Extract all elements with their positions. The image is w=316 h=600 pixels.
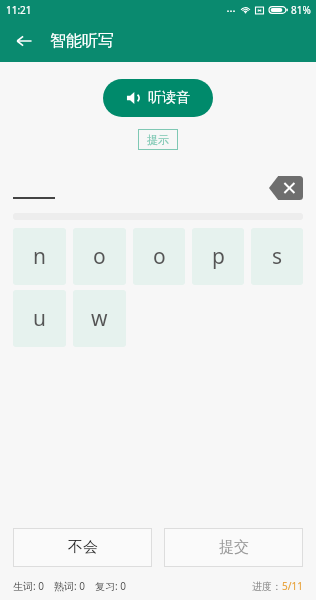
staticText: n — [33, 242, 46, 271]
staticText: 提示 — [147, 133, 169, 147]
button[interactable]: 听读音 — [103, 79, 213, 117]
button[interactable]: u — [13, 290, 66, 347]
button[interactable]: Back — [8, 25, 40, 57]
button[interactable]: s — [251, 228, 303, 285]
staticText: 5/11 — [282, 579, 303, 593]
staticText: 11:21 — [6, 3, 32, 17]
button[interactable]: 不会 — [13, 528, 152, 567]
staticText: 生词: 0 — [13, 579, 44, 593]
staticText: w — [91, 304, 108, 333]
staticText: 听读音 — [148, 89, 190, 107]
button[interactable]: o — [133, 228, 185, 285]
staticText: 熟词: 0 — [54, 579, 85, 593]
button[interactable]: w — [73, 290, 126, 347]
staticText: 复习: 0 — [95, 579, 126, 593]
button[interactable]: Delete — [269, 176, 303, 200]
button[interactable]: 提示 — [138, 129, 178, 150]
staticText: u — [33, 304, 46, 333]
button[interactable]: n — [13, 228, 66, 285]
staticText: 提交 — [219, 538, 249, 557]
staticText: p — [212, 242, 225, 271]
button[interactable]: 提交 — [164, 528, 303, 567]
staticText: o — [93, 242, 106, 271]
button[interactable]: p — [192, 228, 244, 285]
staticText: 不会 — [68, 538, 98, 557]
staticText: s — [272, 242, 283, 271]
staticText: o — [153, 242, 166, 271]
staticText: 81% — [291, 3, 311, 17]
button[interactable]: o — [73, 228, 126, 285]
staticText: 智能听写 — [50, 31, 114, 51]
staticText: 进度： — [252, 580, 282, 593]
